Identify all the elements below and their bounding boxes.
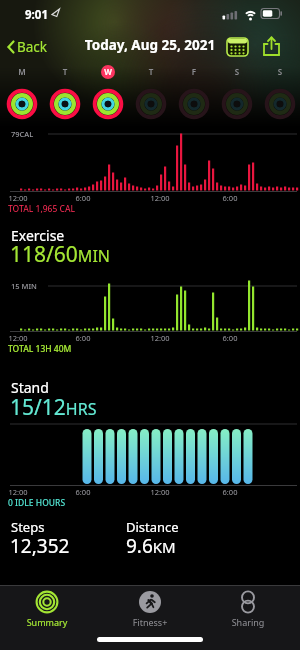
button[interactable]: S	[221, 64, 253, 122]
staticText: W	[92, 66, 124, 77]
staticText: 12:00	[3, 487, 33, 497]
staticText: 0 IDLE HOURS	[8, 497, 66, 509]
staticText: Stand	[11, 378, 49, 397]
staticText: Steps	[11, 518, 45, 536]
staticText: F	[178, 66, 210, 77]
staticText: 6:00	[215, 193, 245, 203]
staticText: 12:00	[3, 333, 33, 343]
staticText: Back	[17, 38, 48, 56]
staticText: Fitness+	[100, 616, 200, 628]
button[interactable]	[259, 33, 287, 59]
staticText: 15 MIN	[11, 281, 37, 291]
staticText: 6:00	[68, 333, 98, 343]
staticText: 6:00	[215, 333, 245, 343]
staticText: 9:01	[25, 7, 48, 23]
staticText: TOTAL 13H 40M	[8, 343, 72, 355]
staticText: 118/60MIN	[10, 240, 110, 269]
staticText: 79CAL	[11, 129, 34, 139]
staticText: Exercise	[11, 226, 65, 245]
staticText: Distance	[126, 518, 179, 536]
staticText: M	[6, 66, 38, 77]
staticText: Sharing	[200, 616, 296, 628]
staticText: Today, Aug 25, 2021	[0, 36, 300, 54]
staticText: TOTAL 1,965 CAL	[8, 203, 75, 215]
staticText: T	[49, 66, 81, 77]
button[interactable]: Back	[6, 35, 54, 57]
staticText: S	[221, 66, 253, 77]
staticText: 12,352	[10, 533, 70, 559]
button[interactable]: Sharing	[200, 586, 300, 650]
button[interactable]: S	[264, 64, 296, 122]
staticText: 15/12HRS	[10, 393, 97, 422]
staticText: T	[135, 66, 167, 77]
button[interactable]: F	[178, 64, 210, 122]
staticText: 12:00	[3, 193, 33, 203]
button[interactable]	[224, 34, 252, 59]
button[interactable]: T	[135, 64, 167, 122]
button[interactable]: W	[92, 64, 124, 122]
staticText: 9.6KM	[126, 533, 176, 559]
staticText: 12:00	[145, 487, 175, 497]
button[interactable]: M	[6, 64, 38, 122]
button[interactable]: Summary	[0, 586, 100, 650]
staticText: Summary	[0, 616, 94, 628]
staticText: 6:00	[68, 487, 98, 497]
staticText: 12:00	[145, 333, 175, 343]
staticText: 12:00	[145, 193, 175, 203]
staticText: 6:00	[215, 487, 245, 497]
staticText: S	[264, 66, 296, 77]
button[interactable]: T	[49, 64, 81, 122]
staticText: 6:00	[68, 193, 98, 203]
button[interactable]: Fitness+	[100, 586, 200, 650]
